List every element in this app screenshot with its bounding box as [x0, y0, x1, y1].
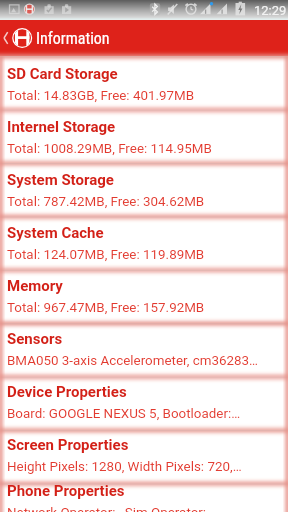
staticText: Memory	[7, 277, 63, 295]
staticText: Sensors	[7, 330, 63, 348]
button[interactable]: Memory	[0, 268, 288, 321]
staticText: BMA050 3-axis Accelerometer, cm36283…	[7, 353, 259, 369]
staticText: Device Properties	[7, 383, 127, 401]
button[interactable]: Device Properties	[0, 374, 288, 427]
button[interactable]: Navigate up	[0, 20, 36, 56]
button[interactable]: Sensors	[0, 321, 288, 374]
staticText: Network Operator: , Sim Operator: …	[7, 505, 219, 512]
staticText: System Storage	[7, 171, 114, 189]
staticText: Total: 124.07MB, Free: 119.89MB	[7, 247, 205, 263]
button[interactable]: System Cache	[0, 215, 288, 268]
staticText: 12:29	[254, 3, 287, 18]
staticText: System Cache	[7, 224, 104, 242]
staticText: Total: 14.83GB, Free: 401.97MB	[7, 88, 195, 104]
staticText: Height Pixels: 1280, Width Pixels: 720,…	[7, 459, 242, 475]
button[interactable]: Screen Properties	[0, 427, 288, 480]
button[interactable]: System Storage	[0, 162, 288, 215]
staticText: Internel Storage	[7, 118, 116, 136]
staticText: Information	[36, 29, 110, 48]
staticText: Phone Properties	[7, 482, 125, 500]
staticText: Board: GOOGLE NEXUS 5, Bootloader:…	[7, 406, 241, 422]
staticText: SD Card Storage	[7, 65, 118, 83]
staticText: Total: 967.47MB, Free: 157.92MB	[7, 300, 205, 316]
staticText: Total: 1008.29MB, Free: 114.95MB	[7, 141, 212, 157]
staticText: Total: 787.42MB, Free: 304.62MB	[7, 194, 205, 210]
button[interactable]: SD Card Storage	[0, 56, 288, 109]
button[interactable]: Phone Properties	[0, 480, 288, 512]
button[interactable]: Internel Storage	[0, 109, 288, 162]
staticText: Screen Properties	[7, 436, 129, 454]
